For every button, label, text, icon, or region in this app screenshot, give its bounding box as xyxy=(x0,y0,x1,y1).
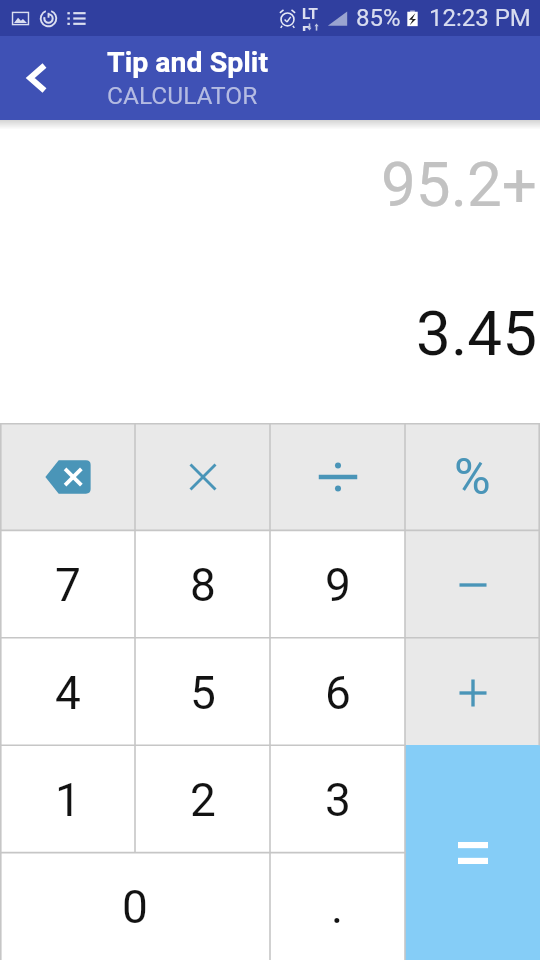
staticText: 3 xyxy=(325,773,351,827)
staticText: LTE xyxy=(302,5,324,31)
staticText: 0 xyxy=(122,880,148,934)
staticText: 12:23 PM xyxy=(429,4,531,32)
button[interactable]: Equals xyxy=(405,745,540,960)
staticText: 9 xyxy=(325,558,351,612)
button[interactable]: . xyxy=(270,853,405,960)
staticText: % xyxy=(454,448,491,507)
staticText: CALCULATOR xyxy=(107,81,258,110)
button[interactable]: 9 xyxy=(270,531,405,639)
button[interactable]: Multiply xyxy=(135,423,270,531)
staticText: 1 xyxy=(55,773,81,827)
staticText: 4 xyxy=(55,666,81,720)
staticText: 6 xyxy=(325,666,351,720)
button[interactable]: Minus xyxy=(405,531,540,639)
button[interactable]: Percent xyxy=(405,423,540,531)
staticText: 3.45 xyxy=(416,297,537,370)
button[interactable]: 0 xyxy=(0,853,270,960)
staticText: Tip and Split xyxy=(107,46,269,79)
staticText: 7 xyxy=(55,558,81,612)
button[interactable]: 2 xyxy=(135,746,270,853)
button[interactable]: 3 xyxy=(270,746,405,853)
button[interactable]: 6 xyxy=(270,639,405,746)
button[interactable]: 8 xyxy=(135,531,270,639)
button[interactable]: 7 xyxy=(0,531,135,639)
staticText: 5 xyxy=(190,666,216,720)
button[interactable]: 4 xyxy=(0,639,135,746)
button[interactable]: 5 xyxy=(135,639,270,746)
button[interactable]: 1 xyxy=(0,746,135,853)
staticText: 2 xyxy=(190,773,216,827)
button[interactable]: Divide xyxy=(270,423,405,531)
button[interactable]: Back xyxy=(6,47,68,109)
staticText: 85% xyxy=(356,4,401,32)
button[interactable]: Backspace xyxy=(0,423,135,531)
staticText: . xyxy=(331,880,344,934)
staticText: 95.2+ xyxy=(380,148,537,221)
button[interactable]: Plus xyxy=(405,639,540,746)
staticText: 8 xyxy=(190,558,216,612)
